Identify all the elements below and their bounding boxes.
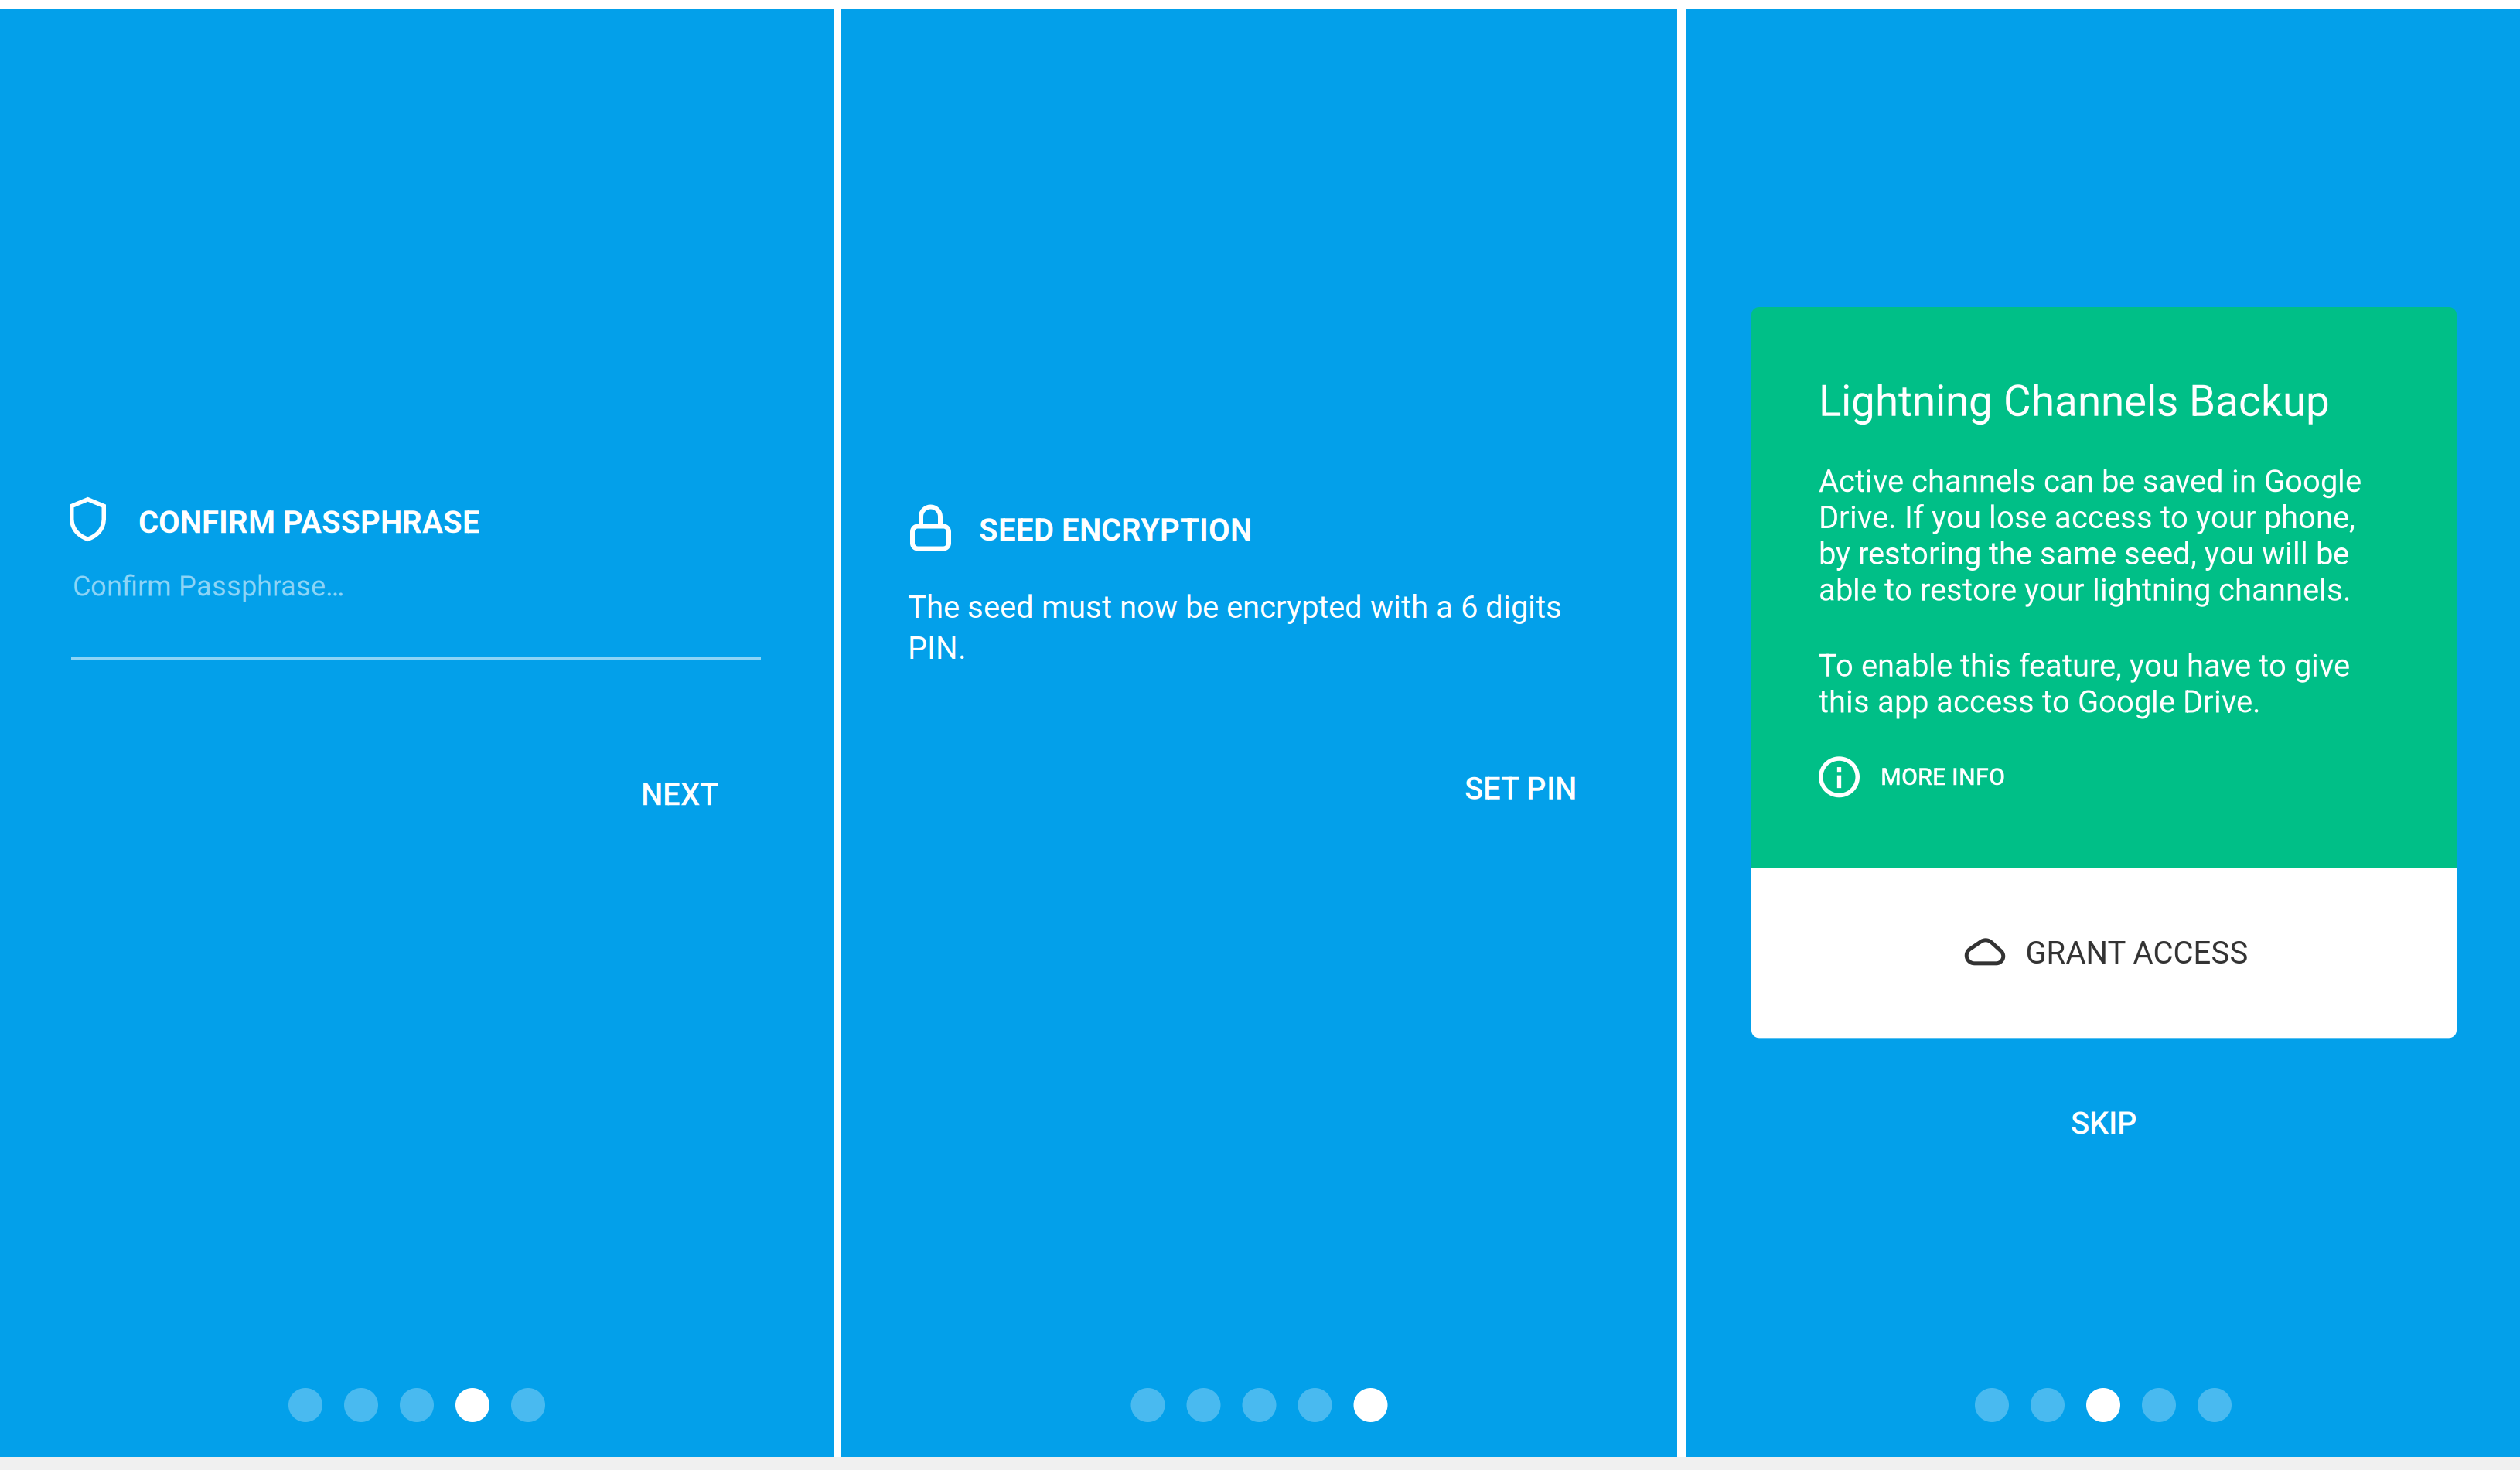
- button[interactable]: NEXT: [70, 749, 762, 841]
- staticText: GRANT ACCESS: [2026, 935, 2248, 971]
- button[interactable]: SET PIN: [908, 743, 1577, 835]
- button[interactable]: SKIP: [1751, 1077, 2457, 1169]
- staticText: To enable this feature, you have to give…: [1819, 648, 2350, 720]
- staticText: CONFIRM PASSPHRASE: [138, 504, 480, 541]
- staticText: The seed must now be encrypted with a 6 …: [908, 589, 1562, 666]
- button[interactable]: MORE INFO: [1819, 756, 2379, 797]
- button[interactable]: GRANT ACCESS: [1751, 868, 2457, 1038]
- staticText: Confirm Passphrase…: [73, 570, 344, 603]
- staticText: MORE INFO: [1881, 763, 2005, 791]
- staticText: Lightning Channels Backup: [1819, 377, 2330, 426]
- staticText: NEXT: [641, 777, 718, 813]
- staticText: SKIP: [2071, 1105, 2137, 1142]
- staticText: SET PIN: [1465, 771, 1577, 807]
- staticText: SEED ENCRYPTION: [979, 512, 1252, 548]
- staticText: Active channels can be saved in Google D…: [1819, 463, 2361, 608]
